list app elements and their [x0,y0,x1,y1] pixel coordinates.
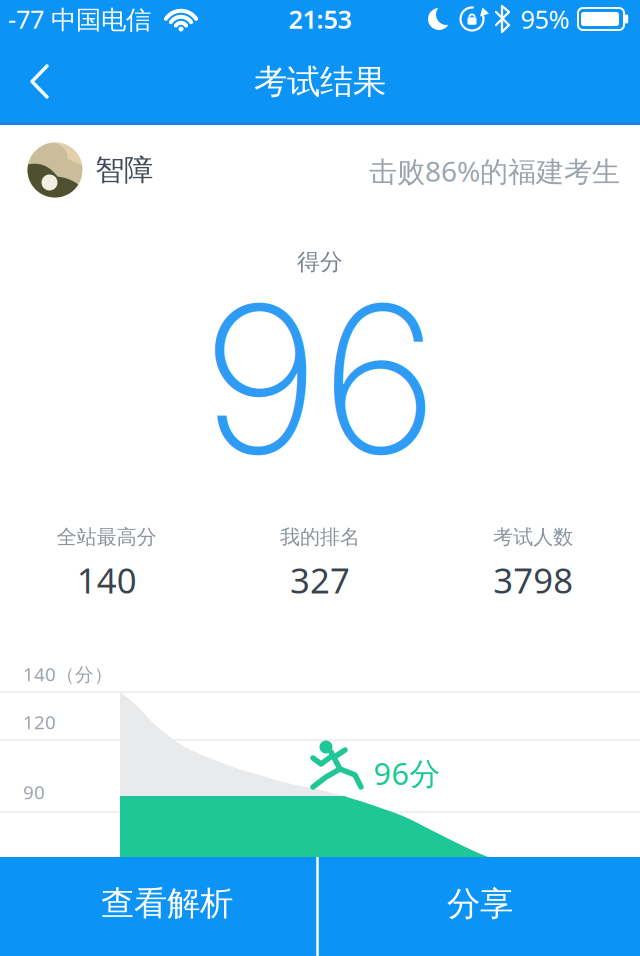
staticText: 智障 [95,152,153,188]
staticText: -77 中国电信 [8,2,151,36]
staticText: 327 [290,557,350,603]
staticText: 我的排名 [280,525,360,549]
staticText: 3798 [493,557,573,603]
staticText: 考试结果 [254,61,386,102]
staticText: 95% [520,2,569,36]
button[interactable]: 分享 [320,857,640,956]
button[interactable]: Back [0,38,80,128]
button[interactable]: 查看解析 [0,857,320,956]
staticText: 击败86%的福建考生 [369,152,620,190]
staticText: 96分 [373,753,440,793]
staticText: 90 [23,780,45,804]
staticText: 21:53 [288,2,351,36]
staticText: 考试人数 [493,525,573,549]
staticText: 查看解析 [101,883,233,924]
staticText: 140（分） [23,662,113,686]
staticText: 96 [201,256,439,502]
staticText: 得分 [297,248,343,276]
staticText: 分享 [447,883,513,924]
staticText: 全站最高分 [57,525,157,549]
staticText: 120 [23,710,56,734]
staticText: 140 [77,557,137,603]
